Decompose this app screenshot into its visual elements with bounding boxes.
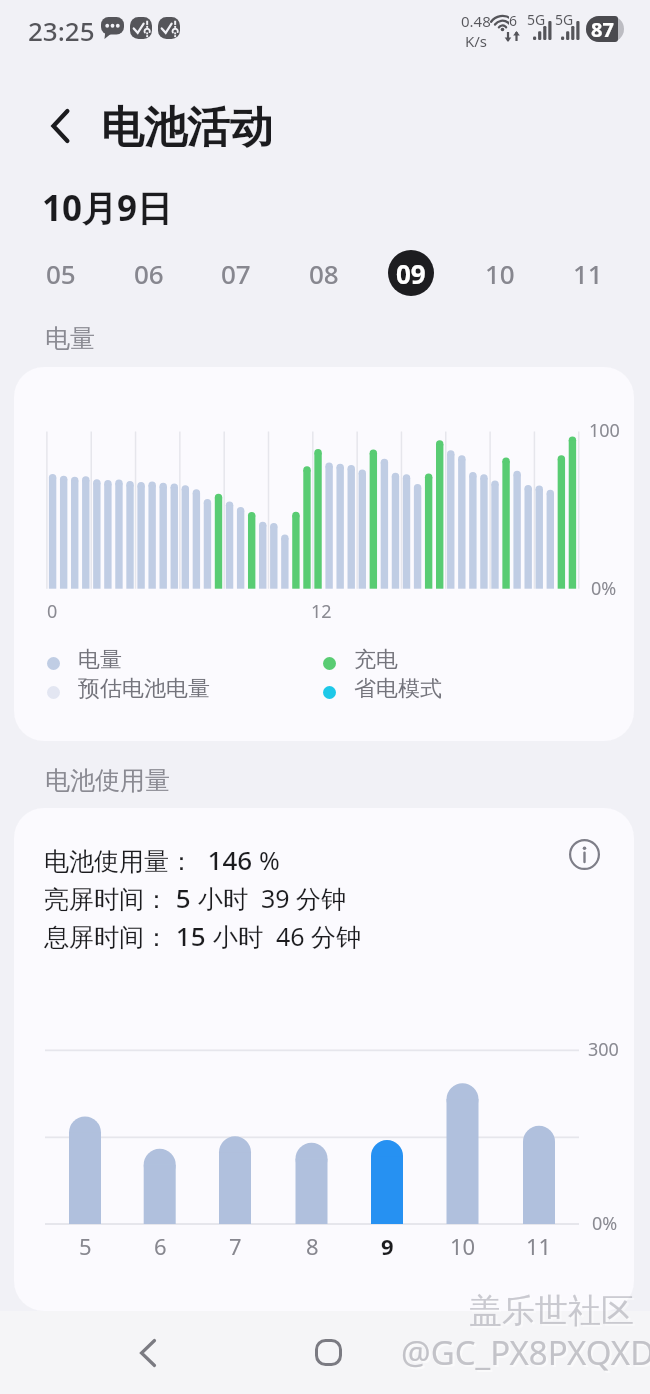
button[interactable]: 10: [477, 250, 523, 296]
staticText: 盖乐世社区: [469, 1290, 634, 1332]
staticText: 8: [306, 1231, 319, 1261]
staticText: 0.48: [461, 11, 491, 31]
staticText: 5G: [527, 10, 546, 29]
staticText: 23:25: [28, 13, 95, 48]
staticText: 10月9日: [42, 184, 173, 232]
staticText: 0%: [591, 576, 617, 601]
staticText: 7: [229, 1231, 242, 1261]
staticText: 15: [169, 918, 213, 953]
staticText: 12: [311, 599, 332, 624]
staticText: 5G: [555, 10, 574, 29]
staticText: 11: [526, 1231, 552, 1261]
staticText: K/s: [465, 31, 488, 51]
staticText: 电量: [78, 646, 122, 674]
staticText: 11: [573, 256, 603, 291]
staticText: 87: [591, 16, 614, 42]
button[interactable]: 09: [388, 250, 434, 296]
staticText: 05: [46, 256, 76, 291]
staticText: 电池使用量: [45, 765, 170, 796]
button[interactable]: 06: [126, 250, 172, 296]
staticText: 08: [309, 256, 339, 291]
button[interactable]: 07: [213, 250, 259, 296]
staticText: 省电模式: [354, 675, 442, 703]
staticText: 电量: [45, 323, 95, 354]
staticText: 电池使用量：: [44, 846, 194, 877]
button[interactable]: Info: [562, 832, 606, 876]
staticText: 电池活动: [101, 101, 273, 155]
staticText: 300: [588, 1037, 619, 1062]
staticText: 146: [194, 842, 259, 877]
staticText: 小时 39 分钟: [198, 881, 347, 915]
staticText: 9: [381, 1231, 394, 1261]
staticText: 充电: [354, 646, 398, 674]
staticText: 息屏时间：: [44, 922, 169, 953]
button[interactable]: 05: [38, 250, 84, 296]
button[interactable]: Recents: [485, 1311, 531, 1394]
staticText: 09: [396, 256, 426, 291]
staticText: 小时 46 分钟: [213, 919, 362, 953]
button[interactable]: Home: [305, 1311, 351, 1394]
staticText: %: [259, 843, 280, 877]
button[interactable]: 08: [301, 250, 347, 296]
staticText: @GC_PX8PXQXD: [403, 1332, 650, 1377]
button[interactable]: 11: [565, 250, 611, 296]
staticText: 0: [47, 599, 58, 624]
staticText: 6: [154, 1231, 167, 1261]
button[interactable]: Back: [125, 1311, 170, 1394]
staticText: 5: [79, 1231, 92, 1261]
staticText: 06: [134, 256, 164, 291]
staticText: 100: [589, 418, 620, 443]
staticText: 6: [509, 11, 518, 30]
staticText: 盖乐世社区: [471, 1292, 636, 1334]
staticText: 预估电池电量: [78, 675, 210, 703]
staticText: 5: [169, 880, 198, 915]
staticText: 0%: [592, 1211, 618, 1236]
staticText: @GC_PX8PXQXD: [401, 1330, 650, 1375]
button[interactable]: Back: [40, 105, 82, 147]
staticText: 10: [485, 256, 515, 291]
staticText: 10: [450, 1231, 476, 1261]
staticText: 07: [221, 256, 251, 291]
staticText: 亮屏时间：: [44, 884, 169, 915]
